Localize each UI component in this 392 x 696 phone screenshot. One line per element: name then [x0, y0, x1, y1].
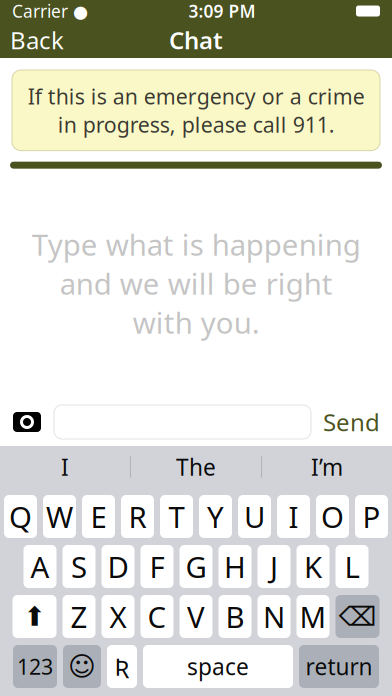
staticText: P	[362, 497, 380, 536]
button[interactable]: 123	[13, 645, 57, 688]
button[interactable]: U	[238, 495, 271, 538]
staticText: Chat	[169, 24, 223, 56]
button[interactable]: I’m	[262, 446, 392, 488]
staticText: L	[344, 547, 359, 586]
button[interactable]: E	[82, 495, 115, 538]
staticText: T	[168, 497, 184, 536]
staticText: ⬆	[23, 601, 45, 632]
staticText: 3:09 PM	[188, 0, 255, 22]
button[interactable]: N	[257, 595, 290, 638]
staticText: K	[304, 547, 322, 586]
staticText: A	[30, 547, 49, 586]
button[interactable]: R	[121, 495, 154, 538]
staticText: J	[270, 547, 278, 586]
staticText: I	[61, 452, 69, 482]
button[interactable]: Y	[199, 495, 232, 538]
staticText: U	[244, 497, 265, 536]
button[interactable]: T	[160, 495, 193, 538]
staticText: G	[185, 547, 206, 586]
staticText: M	[299, 597, 326, 636]
button[interactable]: Send	[321, 400, 382, 444]
staticText: R	[128, 497, 146, 536]
staticText: Carrier ●	[12, 0, 88, 22]
staticText: E	[90, 497, 106, 536]
button[interactable]: L	[335, 545, 368, 588]
button[interactable]: G	[179, 545, 212, 588]
staticText: W	[46, 497, 73, 536]
staticText: Y	[207, 497, 224, 536]
button[interactable]: H	[218, 545, 251, 588]
button[interactable]: O	[316, 495, 349, 538]
staticText: Back	[10, 24, 64, 56]
staticText: S	[71, 547, 87, 586]
staticText: I	[288, 497, 298, 536]
staticText: N	[263, 597, 285, 636]
staticText: Z	[70, 597, 87, 636]
button[interactable]: I	[0, 446, 130, 488]
button[interactable]: return	[299, 645, 379, 688]
staticText: If this is an emergency or a crime in pr…	[27, 82, 364, 139]
staticText: F	[149, 547, 164, 586]
button[interactable]: Delete	[335, 595, 379, 638]
button[interactable]: J	[257, 545, 290, 588]
staticText: The	[176, 452, 216, 482]
staticText: I’m	[311, 452, 343, 482]
staticText: X	[109, 597, 126, 636]
button[interactable]: C	[140, 595, 173, 638]
button[interactable]: Back	[0, 18, 74, 62]
button[interactable]: M	[296, 595, 329, 638]
button[interactable]: Emoji	[63, 645, 101, 688]
button[interactable]: P	[355, 495, 388, 538]
button[interactable]: Shift	[12, 595, 56, 638]
staticText: ⌫	[338, 601, 376, 632]
button[interactable]: The	[131, 446, 261, 488]
staticText: D	[107, 547, 128, 586]
button[interactable]: V	[179, 595, 212, 638]
button[interactable]	[54, 405, 311, 439]
button[interactable]: D	[101, 545, 134, 588]
staticText: space	[187, 651, 249, 681]
button[interactable]: Z	[62, 595, 95, 638]
staticText: 123	[17, 652, 53, 681]
button[interactable]: Q	[4, 495, 37, 538]
button[interactable]: space	[143, 645, 293, 688]
button[interactable]: I	[277, 495, 310, 538]
staticText: Type what is happening and we will be ri…	[31, 225, 360, 342]
button[interactable]: B	[218, 595, 251, 638]
button[interactable]: S	[62, 545, 95, 588]
staticText: V	[187, 597, 205, 636]
staticText: Send	[323, 406, 380, 438]
button[interactable]: X	[101, 595, 134, 638]
staticText: B	[225, 597, 244, 636]
staticText: Q	[9, 497, 32, 536]
staticText: C	[147, 597, 166, 636]
button[interactable]: W	[43, 495, 76, 538]
staticText: H	[224, 547, 246, 586]
staticText: ☺	[68, 651, 96, 682]
staticText: return	[305, 651, 372, 681]
button[interactable]: Camera	[10, 407, 44, 437]
button[interactable]: F	[140, 545, 173, 588]
staticText: Ʀ	[114, 651, 129, 682]
button[interactable]: K	[296, 545, 329, 588]
staticText: O	[321, 497, 344, 536]
button[interactable]: Dictate	[107, 645, 137, 688]
button[interactable]: A	[23, 545, 56, 588]
